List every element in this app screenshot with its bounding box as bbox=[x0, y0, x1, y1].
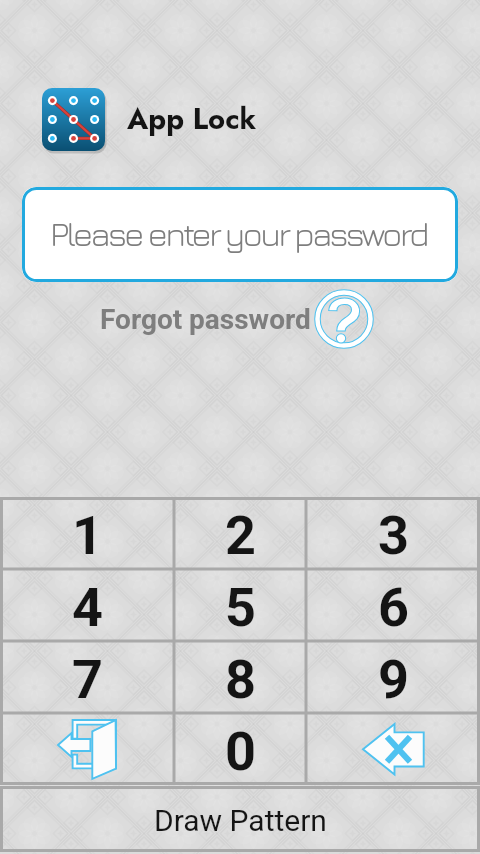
button[interactable]: 7 bbox=[0, 641, 174, 713]
staticText: App Lock bbox=[127, 98, 257, 140]
button[interactable]: 2 bbox=[174, 497, 306, 569]
staticText: 6 bbox=[378, 576, 409, 639]
button[interactable]: Please enter your password bbox=[22, 187, 458, 282]
button[interactable]: Forgot password bbox=[100, 289, 374, 349]
button[interactable]: 6 bbox=[306, 569, 480, 641]
button[interactable]: 5 bbox=[174, 569, 306, 641]
staticText: 3 bbox=[378, 504, 409, 567]
staticText: Draw Pattern bbox=[154, 803, 327, 838]
staticText: 4 bbox=[72, 576, 103, 639]
button[interactable]: 9 bbox=[306, 641, 480, 713]
staticText: 9 bbox=[378, 648, 409, 711]
staticText: 8 bbox=[225, 648, 256, 711]
button[interactable]: 8 bbox=[174, 641, 306, 713]
staticText: 2 bbox=[225, 504, 256, 567]
button[interactable]: Exit bbox=[0, 713, 174, 785]
button[interactable]: 3 bbox=[306, 497, 480, 569]
button[interactable]: 1 bbox=[0, 497, 174, 569]
staticText: 1 bbox=[72, 504, 103, 567]
button[interactable]: 0 bbox=[174, 713, 306, 785]
staticText: Please enter your password bbox=[50, 213, 427, 253]
button[interactable]: Draw Pattern bbox=[0, 786, 480, 852]
staticText: Forgot password bbox=[100, 303, 311, 336]
other: Forgot password help bbox=[314, 289, 374, 349]
button[interactable]: 4 bbox=[0, 569, 174, 641]
staticText: 7 bbox=[72, 648, 103, 711]
staticText: 0 bbox=[225, 720, 256, 783]
staticText: 5 bbox=[225, 576, 256, 639]
button[interactable]: Delete bbox=[306, 713, 480, 785]
